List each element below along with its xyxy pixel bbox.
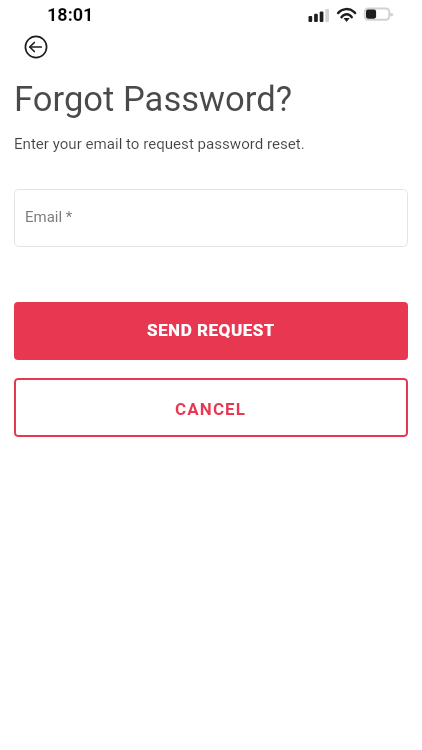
- staticText: 18:01: [47, 4, 94, 25]
- staticText: Enter your email to request password res…: [14, 135, 305, 153]
- button[interactable]: Email *: [14, 189, 408, 247]
- staticText: Forgot Password?: [14, 79, 293, 120]
- staticText: SEND REQUEST: [147, 320, 275, 340]
- staticText: Email *: [25, 208, 73, 226]
- button[interactable]: Back: [19, 30, 52, 63]
- staticText: CANCEL: [175, 399, 247, 419]
- button[interactable]: CANCEL: [14, 378, 408, 437]
- button[interactable]: SEND REQUEST: [14, 302, 408, 360]
